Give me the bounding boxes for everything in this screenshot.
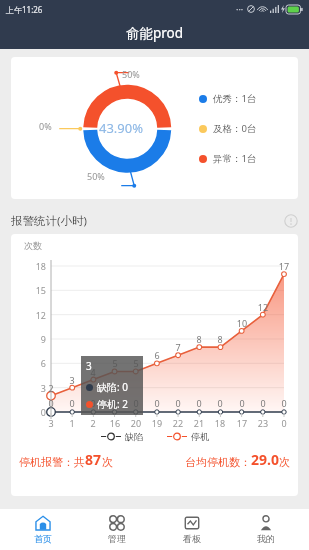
staticText: 4: [83, 366, 103, 378]
button[interactable]: 缺陷: [101, 431, 143, 442]
staticText: 停机报警：共: [19, 455, 85, 469]
staticText: 8: [189, 333, 209, 345]
staticText: 23: [253, 417, 273, 429]
staticText: 5: [105, 357, 125, 369]
staticText: 缺陷: 0: [97, 380, 128, 394]
staticText: 报警统计(小时): [11, 213, 87, 229]
staticText: 俞能prod: [126, 24, 184, 42]
staticText: 22: [168, 417, 188, 429]
staticText: 次: [102, 455, 113, 469]
staticText: 台均停机数：: [185, 455, 251, 469]
staticText: 0: [274, 417, 294, 429]
staticText: 0: [232, 397, 252, 409]
staticText: 12: [24, 309, 46, 321]
staticText: 停机: [191, 431, 209, 442]
staticText: 0: [126, 397, 146, 409]
staticText: 17: [232, 417, 252, 429]
staticText: 20: [126, 417, 146, 429]
staticText: 2: [41, 382, 61, 394]
staticText: 5: [126, 357, 146, 369]
button[interactable]: 我的: [235, 509, 297, 550]
button[interactable]: 及格：0台: [199, 122, 257, 135]
staticText: 17: [274, 260, 294, 272]
button[interactable]: 看板: [161, 509, 223, 550]
staticText: 停机: 2: [97, 397, 128, 411]
staticText: 10: [232, 317, 252, 329]
staticText: 优秀：1台: [213, 92, 257, 105]
staticText: 3: [62, 374, 82, 386]
staticText: 18: [24, 260, 46, 272]
staticText: 3: [41, 417, 61, 429]
staticText: 我的: [257, 533, 275, 544]
staticText: 0: [147, 397, 167, 409]
staticText: 0: [253, 397, 273, 409]
staticText: 看板: [183, 533, 201, 544]
staticText: 及格：0台: [213, 122, 257, 135]
staticText: ···: [236, 3, 244, 15]
staticText: 0: [168, 397, 188, 409]
staticText: 6: [24, 357, 46, 369]
staticText: 8: [210, 333, 230, 345]
staticText: 首页: [34, 533, 52, 544]
staticText: 0: [210, 397, 230, 409]
staticText: 缺陷: [125, 431, 143, 442]
staticText: 0%: [39, 120, 52, 132]
staticText: 2: [83, 417, 103, 429]
staticText: 管理: [108, 533, 126, 544]
button[interactable]: 管理: [86, 509, 148, 550]
staticText: 16: [105, 417, 125, 429]
button[interactable]: 首页: [12, 509, 74, 550]
staticText: 7: [168, 341, 188, 353]
staticText: 次数: [24, 240, 42, 251]
staticText: 18: [210, 417, 230, 429]
button[interactable]: 说明: [284, 214, 298, 228]
staticText: 次: [279, 455, 290, 469]
staticText: 29.0: [251, 450, 279, 469]
staticText: 0: [83, 397, 103, 409]
button[interactable]: 停机: [167, 431, 209, 442]
staticText: 43.90%: [99, 119, 144, 137]
staticText: 3: [86, 359, 92, 373]
staticText: 0: [41, 397, 61, 409]
button[interactable]: 异常：1台: [199, 152, 257, 165]
staticText: 异常：1台: [213, 152, 257, 165]
staticText: 9: [24, 333, 46, 345]
staticText: 19: [147, 417, 167, 429]
staticText: 0: [62, 397, 82, 409]
staticText: 12: [253, 301, 273, 313]
button[interactable]: 优秀：1台: [199, 92, 257, 105]
staticText: 6: [147, 349, 167, 361]
staticText: 0: [105, 397, 125, 409]
staticText: 1: [62, 417, 82, 429]
staticText: 50%: [87, 170, 105, 182]
staticText: 21: [189, 417, 209, 429]
staticText: 3: [24, 382, 46, 394]
staticText: 0: [189, 397, 209, 409]
staticText: 50%: [122, 68, 140, 80]
staticText: 0: [274, 397, 294, 409]
staticText: 87: [85, 450, 102, 469]
staticText: 15: [24, 284, 46, 296]
staticText: 0: [24, 406, 46, 418]
staticText: 上午11:26: [6, 4, 43, 15]
